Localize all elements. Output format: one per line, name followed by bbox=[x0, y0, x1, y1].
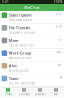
button[interactable]: File Transfer bbox=[0, 24, 64, 36]
button[interactable]: Mom bbox=[0, 36, 64, 49]
staticText: Sat bbox=[59, 76, 62, 79]
staticText: 100% bbox=[54, 0, 62, 4]
button[interactable]: Me bbox=[48, 87, 64, 97]
staticText: Work Group bbox=[9, 50, 31, 56]
staticText: Sounds good! bbox=[9, 69, 29, 72]
button[interactable]: Subscriptions bbox=[0, 11, 64, 24]
staticText: Sun bbox=[57, 63, 62, 66]
staticText: See the latest draft bbox=[9, 82, 35, 85]
staticText: Document received bbox=[9, 31, 36, 34]
button[interactable]: Work Group bbox=[0, 49, 64, 62]
staticText: Daily news digest bbox=[9, 18, 32, 22]
staticText: Call me when free bbox=[9, 44, 35, 47]
staticText: Team bbox=[9, 76, 19, 81]
button[interactable]: Chats bbox=[0, 87, 16, 97]
staticText: Contacts bbox=[18, 92, 29, 96]
staticText: 9:41 bbox=[55, 12, 62, 16]
staticText: 9:41 bbox=[2, 0, 9, 4]
staticText: File Transfer bbox=[9, 25, 31, 30]
staticText: Mon bbox=[56, 50, 62, 54]
staticText: Me bbox=[54, 92, 58, 96]
staticText: Tue bbox=[57, 38, 62, 41]
staticText: 9:20 bbox=[55, 25, 62, 29]
button[interactable]: Contacts bbox=[16, 87, 32, 97]
button[interactable]: Team bbox=[0, 74, 64, 87]
staticText: Mom bbox=[9, 38, 19, 43]
button[interactable]: Discover bbox=[32, 87, 48, 97]
staticText: Alex bbox=[9, 63, 17, 68]
staticText: Meeting at 3pm bbox=[9, 56, 31, 60]
staticText: Chats bbox=[4, 92, 11, 96]
staticText: WeChat bbox=[24, 5, 40, 10]
button[interactable]: Alex bbox=[0, 62, 64, 74]
staticText: Subscriptions bbox=[9, 12, 32, 18]
staticText: Discover bbox=[34, 92, 45, 96]
